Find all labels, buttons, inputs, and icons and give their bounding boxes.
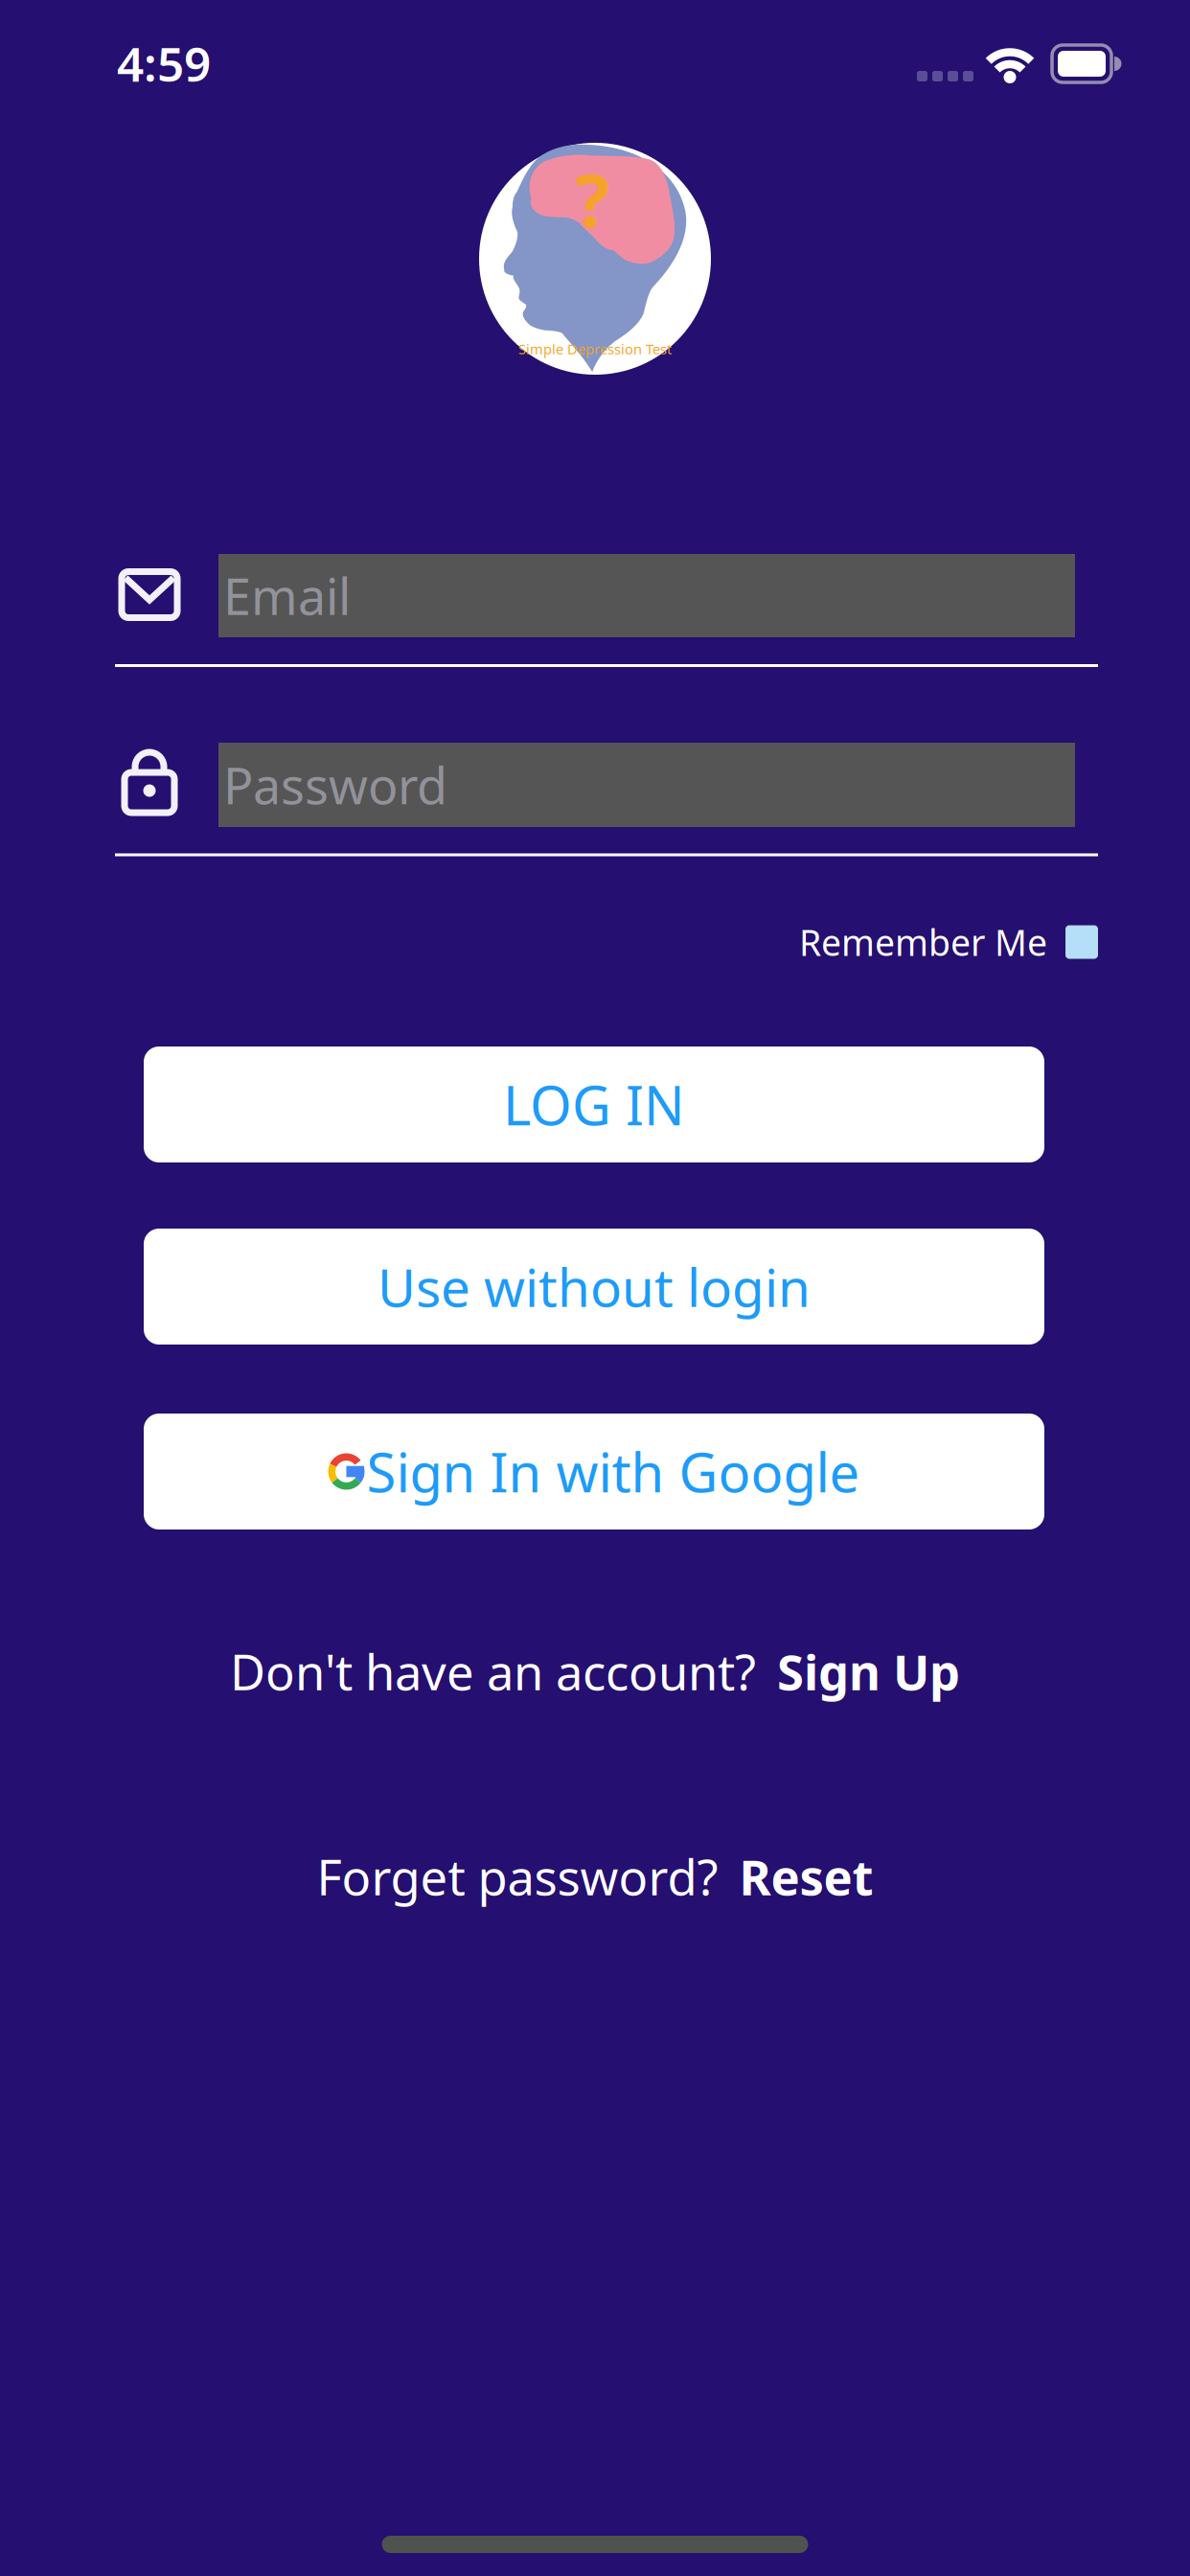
button[interactable]: LOG IN bbox=[144, 1046, 1044, 1162]
staticText: Forget password? bbox=[317, 1844, 718, 1909]
button[interactable]: Sign Up bbox=[777, 1639, 960, 1704]
button[interactable]: Use without login bbox=[144, 1229, 1044, 1345]
staticText: Reset bbox=[739, 1844, 873, 1909]
button[interactable]: Password bbox=[218, 743, 1075, 827]
staticText: Remember Me bbox=[799, 918, 1047, 966]
button[interactable]: Sign In with Google bbox=[144, 1414, 1044, 1529]
staticText: Email bbox=[223, 563, 351, 629]
button[interactable]: Remember Me bbox=[115, 911, 1098, 973]
staticText: LOG IN bbox=[503, 1069, 685, 1140]
button[interactable]: Email bbox=[218, 554, 1075, 637]
staticText: Use without login bbox=[378, 1252, 811, 1321]
staticText: Sign In with Google bbox=[366, 1436, 860, 1507]
staticText: Simple Depression Test bbox=[518, 340, 672, 358]
button[interactable]: Reset bbox=[739, 1844, 873, 1909]
staticText: Sign Up bbox=[777, 1639, 960, 1704]
staticText: 4:59 bbox=[117, 32, 211, 95]
staticText: Password bbox=[223, 752, 447, 818]
staticText: Don't have an account? bbox=[230, 1639, 756, 1704]
staticText: ? bbox=[575, 152, 610, 247]
